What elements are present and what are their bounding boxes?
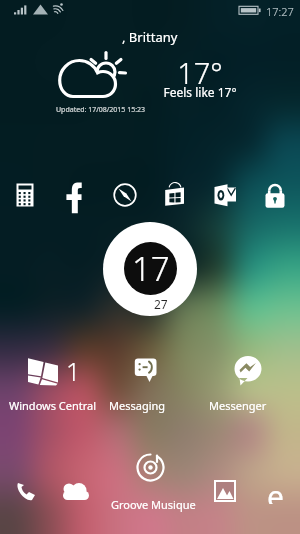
staticText: Groove Musique: [111, 497, 196, 512]
button[interactable]: Groove Musique: [100, 450, 200, 510]
staticText: 17:27: [266, 4, 294, 19]
button[interactable]: , Brittany: [0, 0, 300, 125]
button[interactable]: Outlook: [200, 172, 250, 218]
staticText: 1: [66, 354, 81, 388]
button[interactable]: Edge: [263, 476, 287, 504]
staticText: e: [267, 476, 284, 504]
staticText: Updated: 17/08/2015 15:23: [56, 105, 146, 115]
staticText: Messenger: [209, 398, 267, 413]
button[interactable]: Messenger: [200, 345, 300, 415]
button[interactable]: 17: [103, 222, 197, 316]
button[interactable]: Compass: [100, 172, 150, 218]
staticText: Windows Central: [9, 398, 97, 413]
staticText: , Brittany: [122, 28, 178, 46]
staticText: 17: [132, 246, 170, 291]
button[interactable]: Phone: [15, 479, 38, 502]
button[interactable]: Facebook: [50, 172, 100, 218]
button[interactable]: Calculator: [0, 172, 50, 218]
button[interactable]: Store: [150, 172, 200, 218]
staticText: 27: [154, 296, 168, 312]
button[interactable]: OneDrive: [60, 480, 91, 511]
staticText: 17°: [177, 53, 223, 92]
button[interactable]: Messaging: [100, 345, 200, 415]
button[interactable]: Lock: [250, 172, 300, 218]
button[interactable]: Photos: [214, 480, 236, 502]
staticText: Messaging: [109, 398, 166, 413]
staticText: Feels like 17°: [163, 84, 237, 100]
button[interactable]: 1: [0, 345, 100, 415]
